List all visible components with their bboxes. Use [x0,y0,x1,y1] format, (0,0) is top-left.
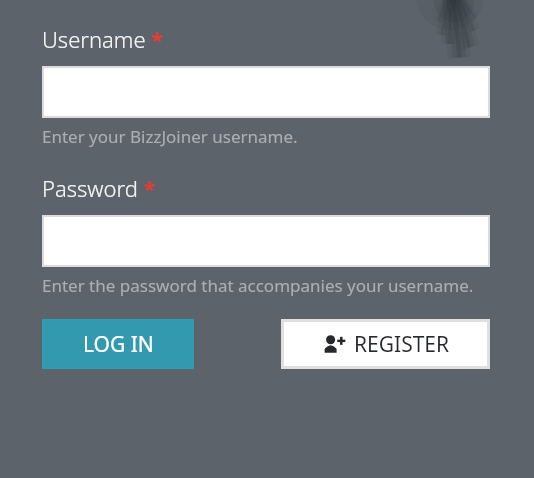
staticText: Username * [42,24,164,54]
staticText: Enter the password that accompanies your… [42,274,474,297]
staticText: LOG IN [83,330,154,359]
button[interactable]: REGISTER [284,322,487,366]
button[interactable]: LOG IN [42,319,194,369]
staticText: Enter your BizzJoiner username. [42,125,298,148]
staticText: Password * [42,173,156,203]
staticText: REGISTER [354,330,450,359]
